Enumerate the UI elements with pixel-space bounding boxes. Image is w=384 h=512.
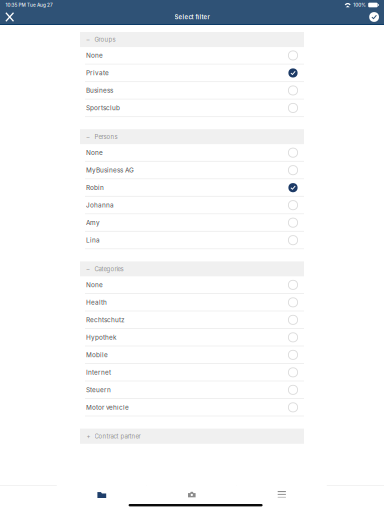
staticText: Business [86, 87, 113, 94]
staticText: Hypothek [86, 333, 117, 341]
button[interactable]: Steuern [80, 382, 304, 398]
button[interactable]: Menu [237, 485, 327, 504]
button[interactable]: – [80, 129, 304, 144]
staticText: Amy [86, 219, 100, 226]
button[interactable]: None [80, 144, 304, 161]
button[interactable]: Business [80, 82, 304, 99]
staticText: None [86, 281, 103, 289]
button[interactable]: None [80, 47, 304, 64]
button[interactable]: Internet [80, 364, 304, 381]
staticText: MyBusiness AG [86, 166, 134, 174]
button[interactable]: Johanna [80, 197, 304, 213]
staticText: Rechtschutz [86, 316, 125, 324]
staticText: + [86, 433, 90, 440]
staticText: Tue Aug 27 [27, 2, 53, 8]
staticText: Persons [94, 133, 117, 140]
staticText: Steuern [86, 386, 111, 394]
staticText: None [86, 149, 103, 156]
button[interactable]: Scan [147, 485, 237, 504]
button[interactable]: Private [80, 65, 304, 81]
button[interactable]: Close [0, 10, 19, 24]
staticText: Mobile [86, 351, 108, 359]
staticText: None [86, 52, 103, 59]
staticText: Johanna [86, 201, 114, 209]
staticText: Private [86, 69, 109, 77]
staticText: Robin [86, 184, 104, 191]
button[interactable]: Mobile [80, 347, 304, 363]
staticText: 10:35 PM [5, 2, 25, 8]
staticText: Motor vehicle [86, 403, 129, 411]
button[interactable]: MyBusiness AG [80, 162, 304, 178]
button[interactable]: Health [80, 294, 304, 311]
staticText: Lina [86, 236, 100, 244]
staticText: Select filter [174, 13, 209, 21]
button[interactable]: None [80, 277, 304, 293]
staticText: – [86, 133, 89, 140]
button[interactable]: Motor vehicle [80, 399, 304, 416]
staticText: Categories [94, 265, 123, 273]
staticText: – [86, 36, 89, 43]
button[interactable]: – [80, 261, 304, 277]
staticText: Internet [86, 368, 111, 376]
button[interactable]: Documents [57, 485, 147, 504]
button[interactable]: Sportsclub [80, 100, 304, 116]
button[interactable]: Rechtschutz [80, 312, 304, 328]
staticText: 100% [353, 2, 366, 8]
staticText: – [86, 265, 89, 273]
button[interactable]: Amy [80, 214, 304, 231]
button[interactable]: Apply filter [364, 10, 384, 24]
button[interactable]: Lina [80, 232, 304, 248]
staticText: Groups [94, 36, 115, 43]
button[interactable]: – [80, 32, 304, 47]
button[interactable]: Hypothek [80, 329, 304, 346]
button[interactable]: + [80, 429, 304, 444]
staticText: Contract partner [94, 433, 140, 440]
button[interactable]: Robin [80, 179, 304, 196]
staticText: Sportsclub [86, 104, 120, 112]
staticText: Health [86, 298, 107, 306]
